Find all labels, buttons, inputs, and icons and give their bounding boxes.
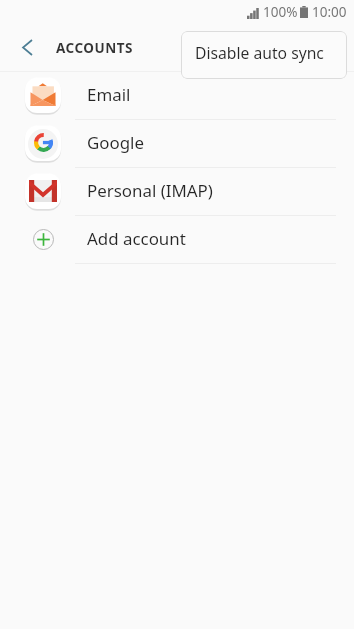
button[interactable]: Add account: [0, 216, 354, 264]
staticText: Add account: [87, 227, 186, 250]
button[interactable]: Disable auto sync: [181, 31, 347, 79]
button[interactable]: Back: [0, 24, 54, 71]
staticText: Google: [87, 131, 145, 154]
button[interactable]: Personal (IMAP): [0, 168, 354, 216]
staticText: 100%: [263, 3, 298, 21]
staticText: Personal (IMAP): [87, 179, 213, 202]
staticText: Email: [87, 83, 131, 106]
button[interactable]: Email: [0, 72, 354, 120]
button[interactable]: Google: [0, 120, 354, 168]
staticText: 10:00: [312, 3, 347, 21]
staticText: ACCOUNTS: [56, 39, 133, 57]
staticText: Disable auto sync: [195, 42, 324, 63]
